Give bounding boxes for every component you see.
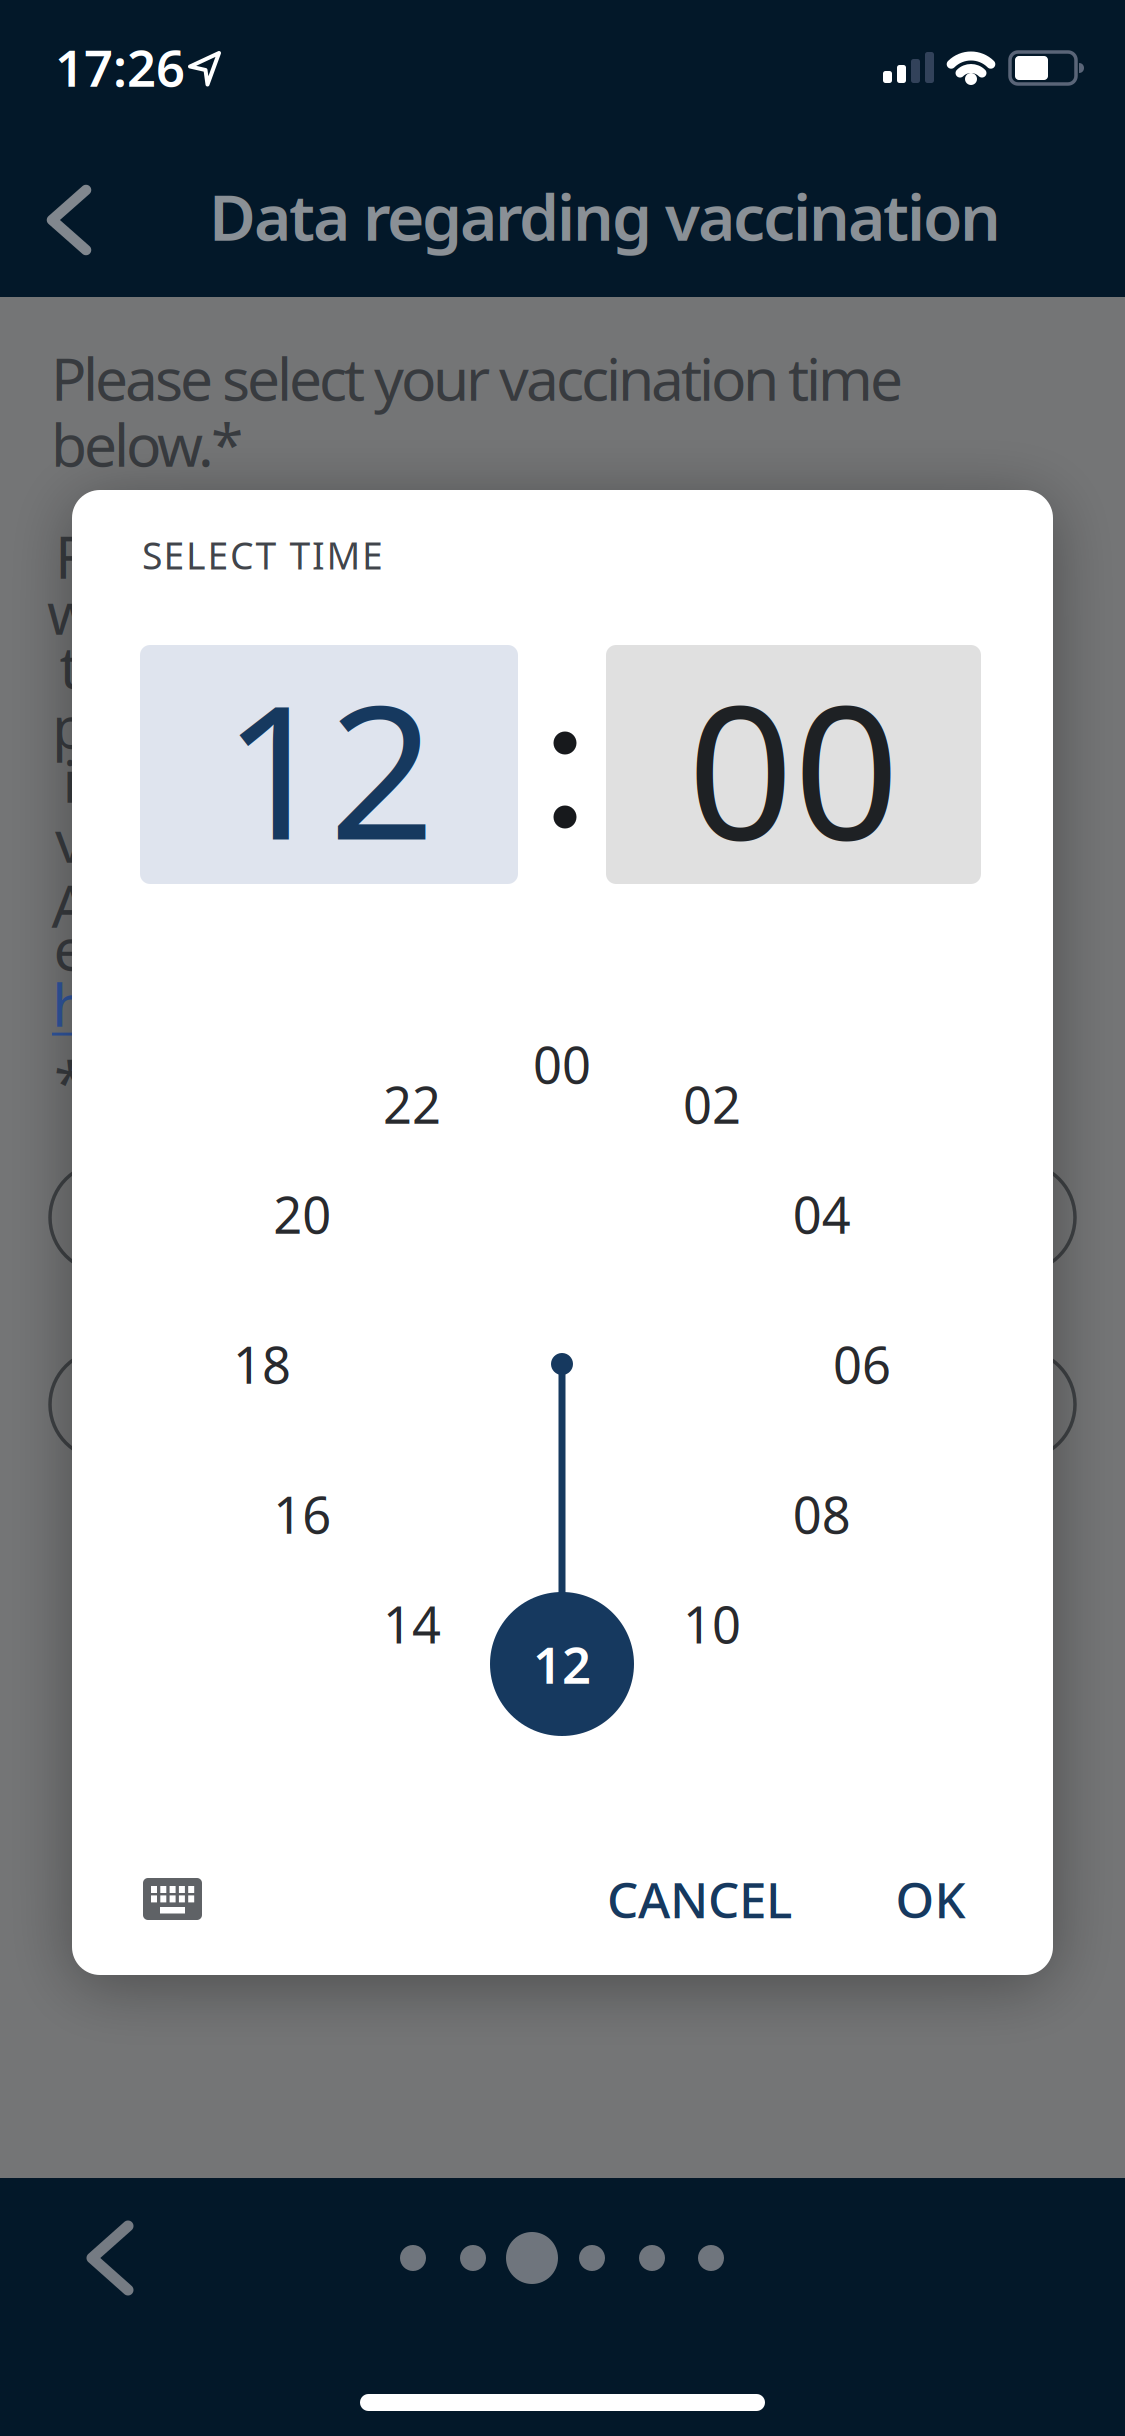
staticText: 12 [533,1630,591,1698]
staticText: Please select your vaccination time [51,339,903,417]
button[interactable]: 20 hours [273,1180,331,1248]
staticText: below.* [51,405,243,483]
button[interactable]: CANCEL [607,1866,792,1932]
staticText: Data regarding vaccination [209,173,1001,258]
button[interactable]: Hour, 12 selected [140,645,518,884]
button[interactable]: Switch to keyboard input [143,1878,202,1920]
button[interactable]: 22 hours [383,1071,441,1138]
staticText: OK [895,1866,965,1932]
staticText: 17:26 [55,33,185,101]
button[interactable]: 14 hours [383,1590,441,1657]
button[interactable]: 00 hours [533,1030,591,1098]
button[interactable]: 12 hours [533,1630,591,1698]
staticText: 16 [273,1480,331,1548]
staticText: 06 [833,1330,891,1398]
staticText: i [62,741,77,819]
staticText: SELECT TIME [142,530,383,580]
staticText: e [53,909,86,987]
button[interactable]: 06 hours [833,1330,891,1398]
staticText: p [52,687,88,765]
button[interactable]: Minutes, 00 [606,645,981,884]
staticText: 00 [687,644,899,890]
staticText: 00 [533,1030,591,1098]
staticText: 20 [273,1180,331,1248]
staticText: 02 [683,1071,741,1138]
staticText: t [59,627,80,705]
button[interactable]: Previous step [60,2198,160,2318]
staticText: 12 [223,644,435,890]
staticText: F [55,517,85,595]
button[interactable]: 16 hours [273,1480,331,1548]
staticText: 22 [383,1071,441,1138]
staticText: A [51,866,88,944]
button[interactable]: 08 hours [793,1480,851,1548]
staticText: 04 [793,1180,851,1248]
button[interactable]: OK [895,1866,965,1932]
staticText: CANCEL [607,1866,792,1932]
staticText: 14 [383,1590,441,1657]
staticText: 10 [683,1590,741,1657]
staticText: w [47,573,93,651]
staticText: v [55,801,85,879]
staticText: * [54,1043,86,1121]
staticText: 08 [793,1480,851,1548]
button[interactable]: 04 hours [793,1180,851,1248]
button[interactable]: 18 hours [233,1330,291,1398]
button[interactable]: 02 hours [683,1071,741,1138]
button[interactable]: Back [12,160,112,280]
staticText: 18 [233,1330,291,1398]
staticText: h [52,965,88,1043]
button[interactable]: 10 hours [683,1590,741,1657]
